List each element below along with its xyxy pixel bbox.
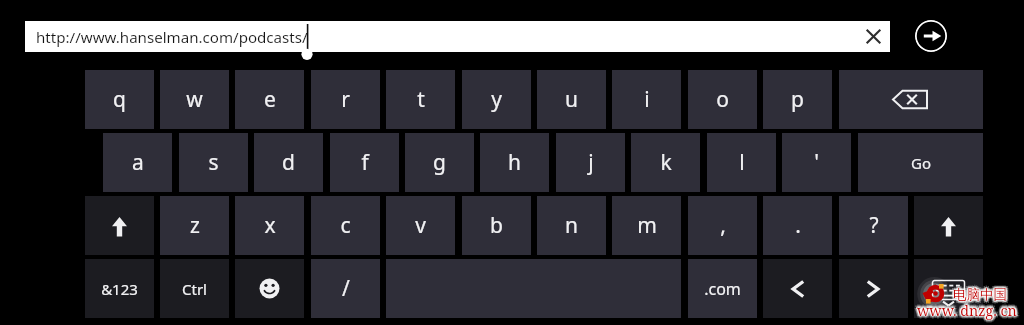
staticText: 电脑中国 bbox=[954, 287, 1008, 304]
button[interactable]: q bbox=[85, 70, 154, 129]
button[interactable]: x bbox=[235, 196, 304, 255]
button[interactable]: Previous bbox=[763, 259, 832, 318]
staticText: d bbox=[282, 148, 295, 177]
button[interactable]: &123 bbox=[85, 259, 154, 318]
staticText: 电脑中国 bbox=[955, 286, 1009, 303]
button[interactable]: Emoji bbox=[235, 259, 304, 318]
button[interactable]: m bbox=[612, 196, 681, 255]
staticText: o bbox=[716, 85, 729, 114]
staticText: t bbox=[417, 85, 425, 114]
staticText: , bbox=[720, 211, 726, 240]
button[interactable]: f bbox=[330, 133, 399, 192]
button[interactable]: y bbox=[462, 70, 531, 129]
staticText: www. dnzg. cn bbox=[917, 304, 1017, 323]
button[interactable]: g bbox=[405, 133, 474, 192]
button[interactable]: t bbox=[386, 70, 455, 129]
staticText: f bbox=[361, 148, 369, 177]
staticText: 电脑中国 bbox=[950, 286, 1004, 303]
staticText: 电脑中国 bbox=[951, 284, 1005, 301]
staticText: www. dnzg. cn bbox=[915, 298, 1015, 317]
button[interactable]: s bbox=[179, 133, 248, 192]
button[interactable]: v bbox=[386, 196, 455, 255]
staticText: h bbox=[508, 148, 521, 177]
staticText: www. dnzg. cn bbox=[915, 302, 1015, 321]
button[interactable]: Backspace bbox=[839, 70, 983, 129]
button[interactable]: j bbox=[556, 133, 625, 192]
button[interactable]: / bbox=[311, 259, 380, 318]
button[interactable]: Shift bbox=[85, 196, 154, 255]
staticText: a bbox=[132, 148, 144, 177]
staticText: e bbox=[264, 85, 276, 114]
button[interactable]: Clear text bbox=[846, 21, 890, 52]
button[interactable]: , bbox=[688, 196, 757, 255]
button[interactable]: w bbox=[160, 70, 229, 129]
button[interactable]: h bbox=[480, 133, 549, 192]
button[interactable]: Next bbox=[839, 259, 908, 318]
button[interactable]: Go bbox=[915, 20, 947, 52]
staticText: 电脑中国 bbox=[954, 286, 1008, 303]
button[interactable]: ? bbox=[839, 196, 908, 255]
button[interactable]: Go bbox=[858, 133, 983, 192]
staticText: 电脑中国 bbox=[953, 286, 1007, 303]
staticText: 电脑中国 bbox=[953, 288, 1007, 305]
staticText: www. dnzg. cn bbox=[918, 300, 1018, 319]
staticText: v bbox=[415, 211, 426, 240]
button[interactable]: c bbox=[311, 196, 380, 255]
button[interactable]: d bbox=[254, 133, 323, 192]
button[interactable]: e bbox=[235, 70, 304, 129]
button[interactable]: a bbox=[103, 133, 172, 192]
button[interactable]: b bbox=[462, 196, 531, 255]
staticText: . bbox=[795, 211, 801, 240]
button[interactable]: i bbox=[612, 70, 681, 129]
staticText: www. dnzg. cn bbox=[917, 302, 1017, 321]
staticText: w bbox=[186, 85, 203, 114]
staticText: z bbox=[190, 211, 200, 240]
staticText: s bbox=[208, 148, 219, 177]
staticText: 电脑中国 bbox=[953, 287, 1007, 304]
staticText: 电脑中国 bbox=[956, 286, 1010, 303]
button[interactable]: l bbox=[707, 133, 776, 192]
staticText: u bbox=[565, 85, 578, 114]
button[interactable]: z bbox=[160, 196, 229, 255]
staticText: www. dnzg. cn bbox=[918, 301, 1018, 320]
button[interactable]: .com bbox=[688, 259, 757, 318]
staticText: k bbox=[660, 148, 672, 177]
staticText: www. dnzg. cn bbox=[917, 303, 1017, 322]
button[interactable]: Ctrl bbox=[160, 259, 229, 318]
staticText: b bbox=[490, 211, 503, 240]
staticText: &123 bbox=[101, 279, 138, 299]
staticText: p bbox=[791, 85, 804, 114]
staticText: www. dnzg. cn bbox=[919, 299, 1019, 318]
staticText: www. dnzg. cn bbox=[916, 301, 1016, 320]
button[interactable]: o bbox=[688, 70, 757, 129]
staticText: www. dnzg. cn bbox=[919, 303, 1019, 322]
button[interactable]: ' bbox=[782, 133, 851, 192]
button[interactable]: . bbox=[763, 196, 832, 255]
staticText: y bbox=[491, 85, 502, 114]
staticText: www. dnzg. cn bbox=[919, 301, 1019, 320]
staticText: 电脑中国 bbox=[953, 283, 1007, 300]
staticText: 电脑中国 bbox=[953, 284, 1007, 301]
staticText: q bbox=[113, 85, 126, 114]
button[interactable]: Hide keyboard bbox=[914, 259, 983, 318]
button[interactable]: http://www.hanselman.com/podcasts/ bbox=[25, 21, 890, 52]
button[interactable]: Shift bbox=[914, 196, 983, 255]
button[interactable]: n bbox=[537, 196, 606, 255]
button[interactable]: k bbox=[631, 133, 700, 192]
button[interactable]: r bbox=[311, 70, 380, 129]
staticText: c bbox=[340, 211, 351, 240]
button[interactable]: p bbox=[763, 70, 832, 129]
staticText: 电脑中国 bbox=[955, 288, 1009, 305]
button[interactable]: u bbox=[537, 70, 606, 129]
staticText: www. dnzg. cn bbox=[917, 301, 1017, 320]
staticText: www. dnzg. cn bbox=[915, 299, 1015, 318]
staticText: www. dnzg. cn bbox=[919, 298, 1019, 317]
staticText: ? bbox=[869, 211, 879, 240]
staticText: Go bbox=[911, 153, 931, 173]
staticText: .com bbox=[704, 278, 741, 300]
staticText: i bbox=[644, 85, 650, 114]
staticText: http://www.hanselman.com/podcasts/ bbox=[36, 27, 308, 48]
staticText: 电脑中国 bbox=[954, 285, 1008, 302]
staticText: g bbox=[433, 148, 446, 177]
